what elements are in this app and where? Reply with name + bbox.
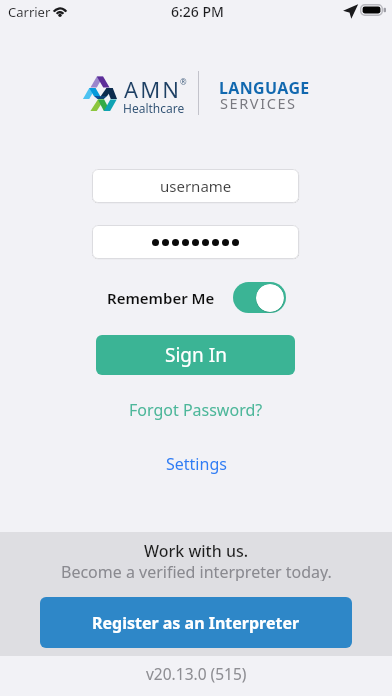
button[interactable]: Settings: [156, 450, 236, 478]
button[interactable]: [92, 225, 299, 259]
staticText: Become a verified interpreter today.: [61, 561, 332, 581]
staticText: Settings: [166, 453, 227, 475]
staticText: LANGUAGE: [219, 77, 310, 99]
staticText: Sign In: [165, 342, 227, 368]
button[interactable]: username: [92, 169, 299, 203]
staticText: Healthcare: [123, 100, 185, 116]
button[interactable]: Forgot Password?: [122, 396, 270, 424]
staticText: Work with us.: [144, 540, 249, 560]
staticText: ®: [180, 76, 187, 87]
button[interactable]: Register as an Interpreter: [40, 597, 352, 648]
staticText: Forgot Password?: [129, 399, 263, 421]
staticText: Remember Me: [107, 288, 215, 308]
button[interactable]: Remember Me toggle: [233, 282, 286, 313]
staticText: Carrier: [8, 3, 51, 21]
staticText: 6:26 PM: [171, 2, 224, 21]
staticText: Register as an Interpreter: [92, 612, 300, 634]
staticText: AMN: [124, 74, 182, 104]
staticText: v20.13.0 (515): [146, 663, 247, 683]
staticText: username: [160, 176, 232, 196]
button[interactable]: Sign In: [96, 335, 295, 375]
staticText: SERVICES: [220, 93, 297, 113]
